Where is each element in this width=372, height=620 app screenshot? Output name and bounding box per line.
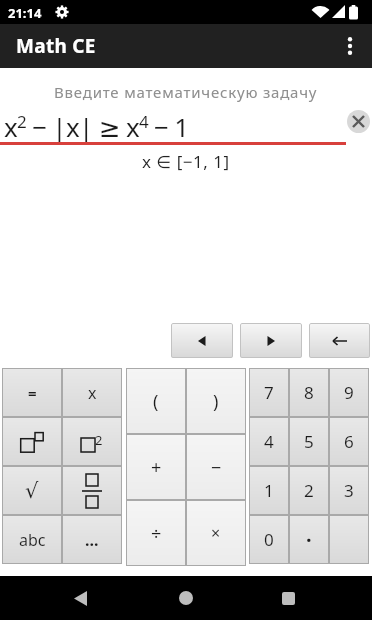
button[interactable]: 0: [249, 515, 289, 564]
button[interactable]: 9: [329, 368, 369, 417]
button[interactable]: 2: [62, 417, 122, 466]
staticText: abc: [19, 529, 46, 551]
button[interactable]: ×: [186, 500, 246, 566]
button[interactable]: 3: [329, 466, 369, 515]
button[interactable]: √: [2, 466, 62, 515]
staticText: Введите математическую задачу: [54, 82, 318, 102]
button[interactable]: 1: [249, 466, 289, 515]
staticText: ×: [211, 522, 221, 544]
button[interactable]: 6: [329, 417, 369, 466]
button[interactable]: [309, 323, 370, 358]
staticText: Math CE: [16, 33, 96, 59]
staticText: ): [213, 389, 219, 414]
button[interactable]: ): [186, 368, 246, 434]
staticText: 6: [344, 430, 354, 453]
button[interactable]: =: [2, 368, 62, 417]
staticText: 9: [344, 381, 354, 404]
button[interactable]: ·: [289, 515, 329, 564]
button[interactable]: +: [126, 434, 186, 500]
button[interactable]: 7: [249, 368, 289, 417]
button[interactable]: ÷: [126, 500, 186, 566]
button[interactable]: [347, 110, 370, 133]
button[interactable]: [2, 417, 62, 466]
staticText: 3: [344, 479, 354, 502]
staticText: =: [28, 383, 37, 403]
staticText: 4: [264, 430, 274, 453]
staticText: 8: [304, 381, 314, 404]
staticText: ...: [85, 529, 99, 551]
button[interactable]: 2: [289, 466, 329, 515]
button[interactable]: 4: [249, 417, 289, 466]
button[interactable]: ...: [62, 515, 122, 564]
button[interactable]: abc: [2, 515, 62, 564]
staticText: ÷: [151, 521, 162, 546]
button[interactable]: (: [126, 368, 186, 434]
button[interactable]: x: [62, 368, 122, 417]
button[interactable]: [62, 466, 122, 515]
button[interactable]: −: [186, 434, 246, 500]
button[interactable]: [329, 515, 369, 564]
staticText: ·: [306, 526, 312, 553]
staticText: x ∈ [−1, 1]: [142, 150, 230, 173]
button[interactable]: [171, 323, 233, 358]
staticText: (: [153, 389, 159, 414]
button[interactable]: 5: [289, 417, 329, 466]
staticText: 2: [304, 479, 314, 502]
button[interactable]: 8: [289, 368, 329, 417]
button[interactable]: [168, 576, 204, 620]
button[interactable]: [240, 323, 302, 358]
staticText: 5: [304, 430, 314, 453]
staticText: +: [151, 455, 162, 480]
button[interactable]: [270, 576, 306, 620]
staticText: x2 − |x| ≥ x4 − 1: [4, 109, 189, 144]
staticText: √: [25, 479, 39, 503]
staticText: 1: [264, 479, 274, 502]
button[interactable]: [328, 24, 372, 68]
staticText: 7: [264, 381, 274, 404]
staticText: 0: [264, 528, 274, 551]
staticText: 21:14: [8, 4, 42, 22]
staticText: −: [211, 455, 222, 480]
staticText: x: [88, 382, 97, 404]
button[interactable]: [62, 576, 98, 620]
staticText: 2: [95, 431, 103, 449]
